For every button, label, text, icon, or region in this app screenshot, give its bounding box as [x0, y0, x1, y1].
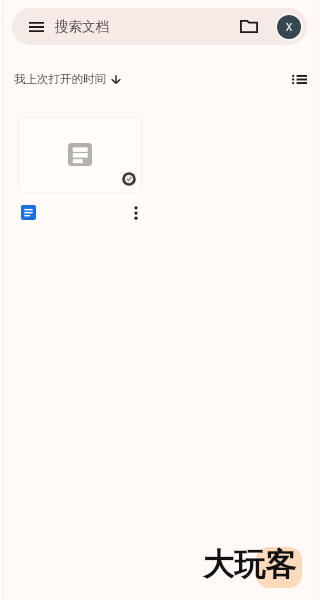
button[interactable]: Switch to list view — [284, 66, 315, 92]
button[interactable] — [18, 117, 142, 193]
staticText: 我上次打开的时间 — [14, 72, 106, 86]
staticText: X — [286, 20, 293, 34]
button[interactable]: Open navigation menu — [17, 8, 55, 45]
button[interactable]: More options — [124, 200, 148, 226]
button[interactable]: Open navigation menu — [12, 8, 307, 45]
staticText: 搜索文档 — [55, 18, 109, 35]
staticText: 大玩客 — [203, 545, 296, 584]
button[interactable]: Account — [275, 13, 303, 41]
button[interactable]: 我上次打开的时间 — [14, 66, 121, 92]
button[interactable]: Folders — [227, 8, 271, 45]
